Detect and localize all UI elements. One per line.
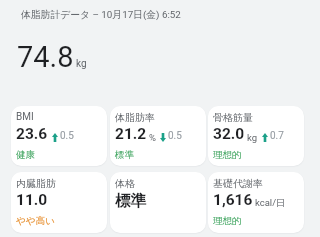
staticText: 理想的	[213, 149, 242, 161]
staticText: 11.0	[16, 191, 48, 209]
staticText: 1,616	[213, 191, 253, 209]
staticText: kcal/日	[255, 197, 286, 209]
staticText: 74.8	[17, 40, 74, 74]
staticText: 健康	[16, 149, 35, 161]
staticText: kg	[76, 58, 87, 70]
staticText: %	[149, 132, 156, 143]
staticText: 基礎代謝率	[213, 177, 263, 190]
staticText: 内臓脂肪	[16, 177, 56, 190]
staticText: BMI	[16, 111, 34, 123]
staticText: 体脂肪計データ – 10月17日(金) 6:52	[21, 9, 181, 21]
staticText: 0.5	[168, 130, 182, 142]
button[interactable]: 内臓脂肪	[11, 172, 107, 233]
button[interactable]: 体脂肪率	[110, 106, 206, 166]
button[interactable]: 体格	[110, 172, 206, 233]
staticText: 23.6	[16, 125, 48, 143]
button[interactable]: 骨格筋量	[208, 106, 304, 166]
staticText: 標準	[115, 149, 134, 161]
staticText: 0.7	[270, 130, 284, 142]
staticText: 21.2	[115, 125, 147, 143]
staticText: 骨格筋量	[213, 111, 253, 124]
staticText: 0.5	[60, 130, 74, 142]
staticText: 理想的	[213, 215, 242, 227]
staticText: 体格	[115, 177, 135, 190]
staticText: 標準	[115, 191, 146, 211]
staticText: 体脂肪率	[115, 111, 155, 124]
staticText: kg	[247, 132, 258, 143]
staticText: 32.0	[213, 125, 245, 143]
staticText: やや高い	[16, 215, 55, 227]
button[interactable]: 基礎代謝率	[208, 172, 304, 233]
button[interactable]: BMI	[11, 106, 107, 166]
